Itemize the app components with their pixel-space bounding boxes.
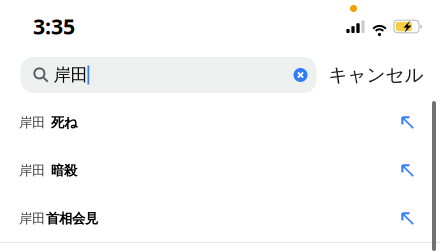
staticText: 暗殺	[51, 162, 77, 179]
staticText: 岸田	[19, 210, 45, 227]
staticText: 岸田	[19, 162, 45, 179]
staticText: 首相会見	[46, 210, 98, 227]
staticText: 岸田	[53, 64, 87, 86]
staticText: 死ね	[51, 114, 78, 131]
button[interactable]: 岸田	[0, 147, 440, 195]
staticText: キャンセル	[328, 63, 423, 86]
button[interactable]: 岸田	[0, 195, 440, 243]
button[interactable]: 岸田	[0, 99, 440, 147]
button[interactable]: キャンセル	[316, 57, 437, 93]
button[interactable]: Clear text	[293, 68, 316, 82]
staticText: 岸田	[19, 114, 45, 131]
staticText: 3:35	[33, 12, 75, 40]
